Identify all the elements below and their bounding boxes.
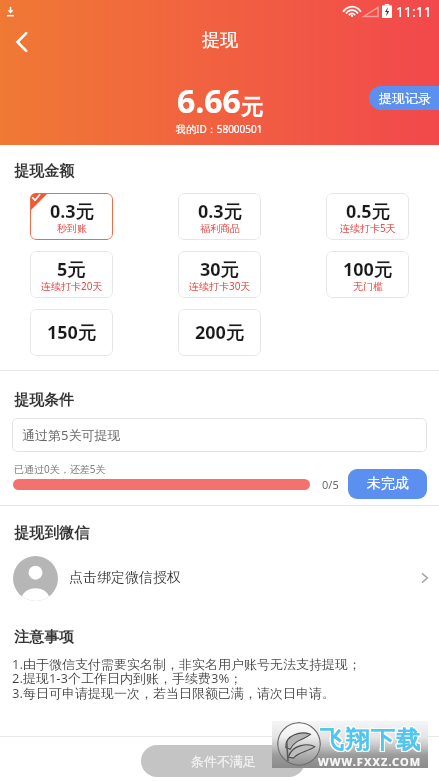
staticText: 11:11	[396, 2, 432, 21]
staticText: 5元	[57, 257, 86, 282]
staticText: 0.3元	[50, 199, 94, 224]
staticText: 已通过0关，还差5关	[14, 462, 106, 476]
staticText: 0/5	[322, 477, 339, 492]
button[interactable]: 提现记录	[369, 86, 439, 110]
button[interactable]: 未完成	[348, 469, 427, 499]
staticText: 30元	[200, 257, 239, 282]
button[interactable]: 100元	[326, 251, 409, 298]
staticText: 连续打卡30天	[189, 279, 251, 293]
staticText: 提现条件	[14, 391, 74, 410]
staticText: 提现记录	[379, 90, 431, 106]
staticText: 0.3元	[198, 199, 242, 224]
staticText: 6.66	[177, 79, 241, 123]
staticText: 元	[241, 94, 263, 122]
staticText: 提现	[202, 29, 238, 52]
staticText: 福利商品	[200, 222, 240, 235]
staticText: 飞翔下载	[319, 724, 421, 754]
staticText: 未完成	[367, 475, 409, 493]
staticText: 3.每日可申请提现一次，若当日限额已满，请次日申请。	[12, 684, 335, 702]
button[interactable]: 150元	[30, 309, 113, 356]
staticText: 2.提现1-3个工作日内到账，手续费3%；	[12, 669, 243, 687]
staticText: 无门槛	[353, 280, 383, 293]
staticText: 1.由于微信支付需要实名制，非实名用户账号无法支持提现；	[12, 655, 361, 673]
button[interactable]: 5元	[30, 251, 113, 298]
staticText: 连续打卡5天	[340, 221, 396, 235]
staticText: 200元	[195, 320, 244, 345]
staticText: 飞翔下载	[319, 726, 421, 756]
staticText: 提现到微信	[14, 524, 89, 543]
staticText: 注意事项	[14, 628, 74, 647]
staticText: 0.5元	[346, 199, 390, 224]
button[interactable]: 条件不满足	[141, 745, 305, 777]
staticText: 100元	[343, 257, 392, 282]
button[interactable]: 0.3元	[178, 193, 261, 240]
button[interactable]: 点击绑定微信授权	[0, 549, 439, 607]
button[interactable]: 0.5元	[326, 193, 409, 240]
staticText: 我的ID：58000501	[176, 122, 263, 136]
button[interactable]: Back	[0, 20, 44, 64]
staticText: 连续打卡20天	[41, 279, 103, 293]
staticText: 条件不满足	[191, 753, 256, 769]
staticText: 150元	[47, 320, 96, 345]
staticText: 点击绑定微信授权	[69, 569, 181, 587]
staticText: 飞翔下载	[318, 724, 420, 754]
staticText: 秒到账	[57, 222, 87, 235]
staticText: 飞翔下载	[320, 724, 422, 754]
staticText: 飞翔下载	[318, 726, 420, 756]
staticText: 飞翔下载	[320, 726, 422, 756]
staticText: 飞翔下载	[318, 725, 420, 755]
staticText: 提现金额	[14, 162, 74, 181]
staticText: 飞翔下载	[320, 725, 422, 755]
button[interactable]: 200元	[178, 309, 261, 356]
staticText: 飞翔下载	[319, 725, 421, 755]
button[interactable]: 0.3元	[30, 193, 113, 240]
staticText: 通过第5关可提现	[22, 426, 121, 444]
staticText: WWW.FXXZ.COM	[318, 754, 422, 769]
button[interactable]: 30元	[178, 251, 261, 298]
